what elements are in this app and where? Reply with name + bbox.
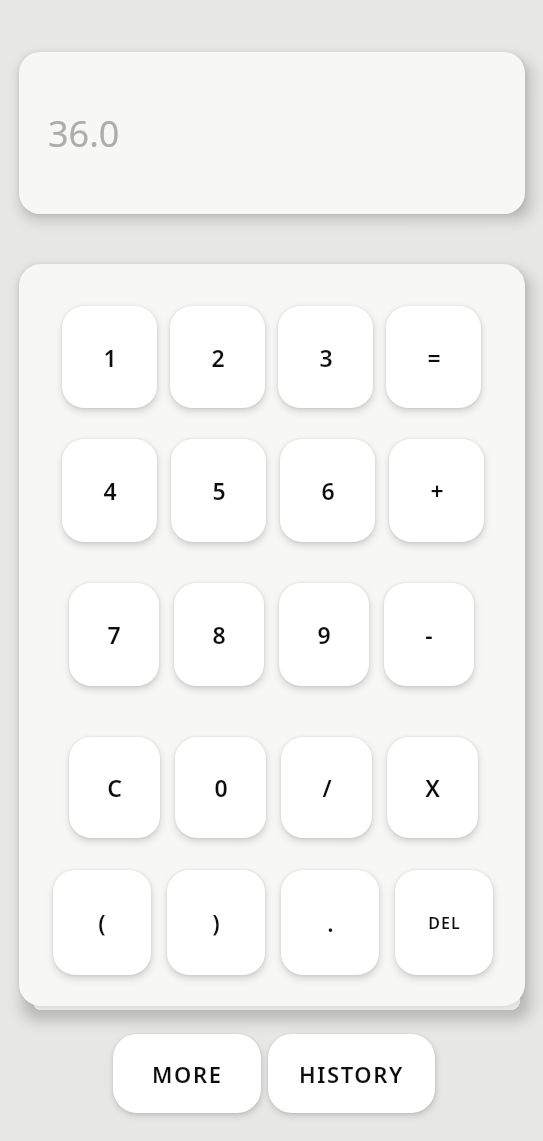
staticText: 4	[103, 475, 117, 506]
staticText: X	[425, 772, 440, 803]
button[interactable]: 2	[170, 306, 265, 408]
button[interactable]: 0	[175, 737, 266, 838]
button[interactable]: 4	[62, 439, 157, 542]
staticText: 1	[103, 342, 117, 373]
staticText: HISTORY	[299, 1059, 404, 1089]
button[interactable]: 1	[62, 306, 157, 408]
button[interactable]: Close parenthesis	[167, 870, 265, 975]
staticText: 0	[214, 772, 228, 803]
button[interactable]: Multiply	[387, 737, 478, 838]
staticText: DEL	[428, 912, 461, 934]
button[interactable]: Clear	[69, 737, 160, 838]
staticText: 2	[211, 342, 225, 373]
staticText: 36.0	[48, 109, 120, 158]
staticText: 3	[319, 342, 333, 373]
staticText: =	[427, 342, 441, 373]
button[interactable]: 36.0	[19, 52, 525, 214]
staticText: 8	[212, 619, 226, 650]
staticText: (	[98, 907, 106, 938]
button[interactable]: Decimal point	[281, 870, 379, 975]
staticText: )	[212, 907, 220, 938]
button[interactable]: Delete	[395, 870, 493, 975]
button[interactable]: 8	[174, 583, 264, 686]
button[interactable]: 7	[69, 583, 159, 686]
staticText: 6	[321, 475, 335, 506]
staticText: C	[107, 772, 122, 803]
staticText: .	[327, 907, 334, 938]
staticText: 9	[317, 619, 331, 650]
staticText: -	[425, 619, 433, 650]
staticText: 7	[107, 619, 121, 650]
button[interactable]: Minus	[384, 583, 474, 686]
button[interactable]: Open parenthesis	[53, 870, 151, 975]
button[interactable]: 5	[171, 439, 266, 542]
button[interactable]: MORE	[113, 1034, 261, 1113]
staticText: 5	[212, 475, 226, 506]
button[interactable]: Divide	[281, 737, 372, 838]
button[interactable]: 3	[278, 306, 373, 408]
staticText: /	[322, 772, 332, 803]
button[interactable]: 6	[280, 439, 375, 542]
button[interactable]: Equals	[386, 306, 481, 408]
button[interactable]: 9	[279, 583, 369, 686]
button[interactable]: Plus	[389, 439, 484, 542]
staticText: MORE	[152, 1059, 223, 1089]
staticText: +	[430, 475, 444, 506]
button[interactable]: HISTORY	[268, 1034, 435, 1113]
